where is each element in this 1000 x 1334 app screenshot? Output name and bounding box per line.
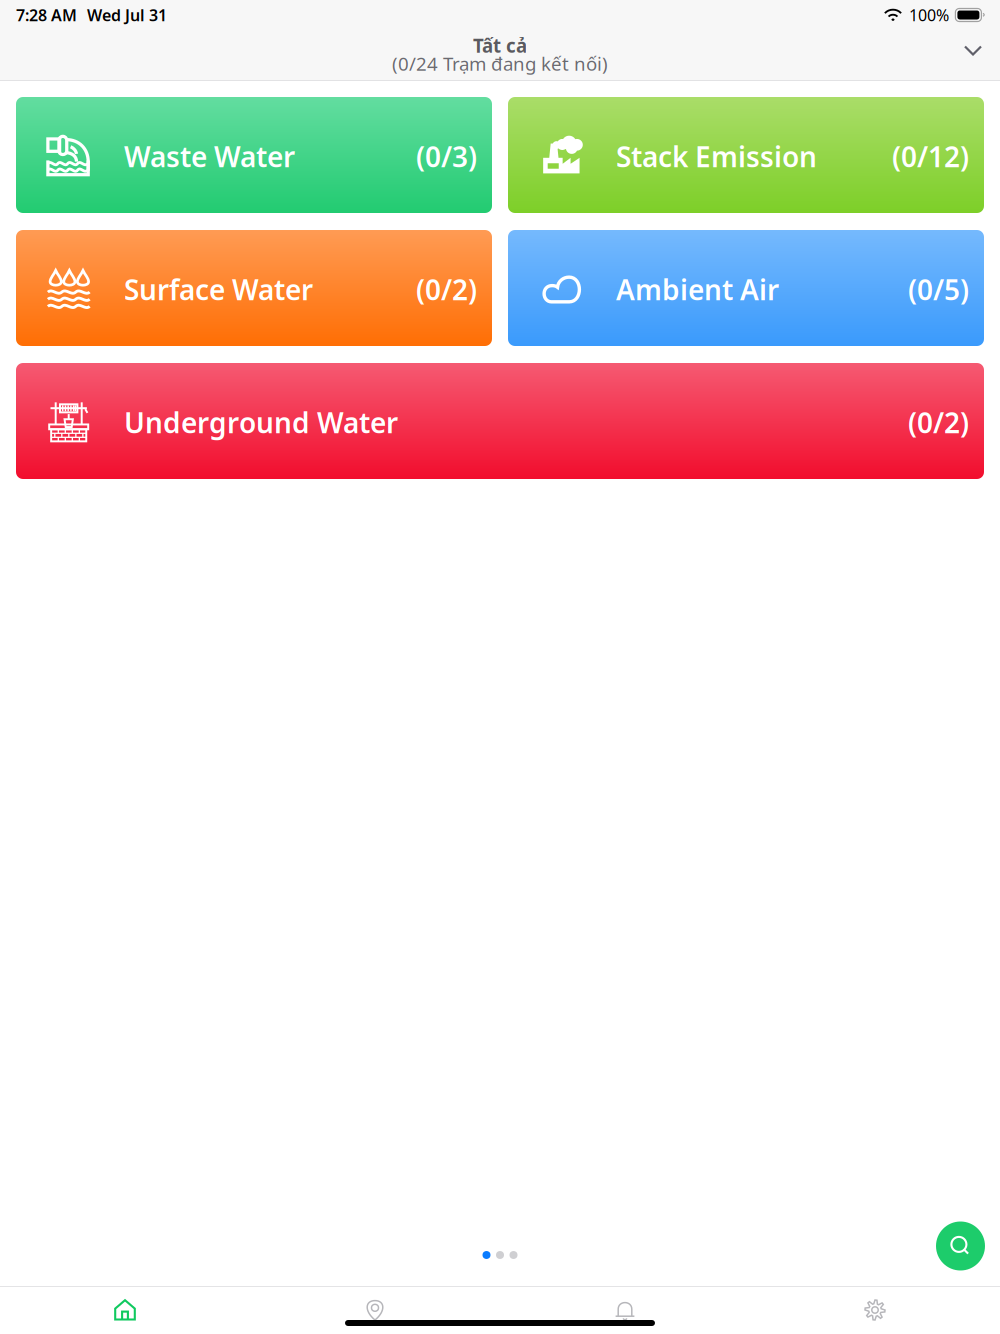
staticText: Waste Water [124,138,295,175]
staticText: (0/24 Trạm đang kết nối) [392,51,608,76]
button[interactable]: Stack Emission [508,97,984,213]
staticText: (0/3) [416,138,477,175]
button[interactable]: Ambient Air [508,230,984,346]
button[interactable]: Notifications [500,1287,750,1333]
staticText: Underground Water [124,404,398,441]
staticText: 7:28 AM [16,4,77,26]
button[interactable]: Home [0,1287,250,1333]
button[interactable]: Waste Water [16,97,492,213]
staticText: Stack Emission [616,138,817,175]
button[interactable]: Surface Water [16,230,492,346]
staticText: (0/2) [416,271,477,308]
staticText: Ambient Air [616,271,779,308]
button[interactable]: Underground Water [16,363,984,479]
staticText: 100% [909,4,949,26]
button[interactable]: Settings [750,1287,1000,1333]
staticText: Wed Jul 31 [87,4,167,26]
staticText: (0/12) [892,138,969,175]
staticText: Surface Water [124,271,313,308]
button[interactable]: Search [936,1221,1000,1270]
staticText: (0/5) [908,271,969,308]
staticText: (0/2) [908,404,969,441]
staticText: Tất cả [473,33,527,58]
button[interactable]: Map [250,1287,500,1333]
button[interactable]: Expand [963,39,1000,71]
